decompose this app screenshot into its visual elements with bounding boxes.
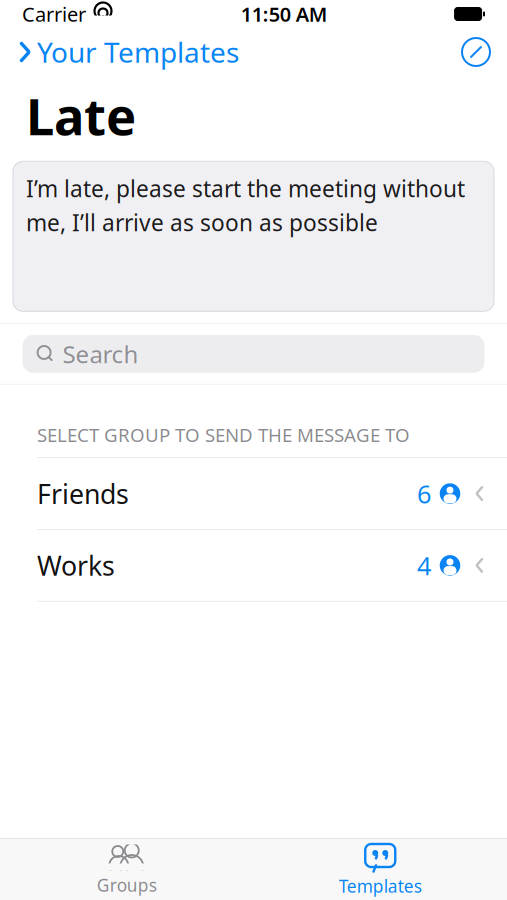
button[interactable]: Works bbox=[0, 530, 507, 601]
staticText: Friends bbox=[37, 476, 129, 511]
staticText: 4 bbox=[417, 549, 431, 582]
button[interactable]: Search bbox=[22, 335, 484, 373]
staticText: I’m late, please start the meeting witho… bbox=[26, 173, 465, 237]
button[interactable]: Edit template bbox=[445, 31, 507, 73]
staticText: Carrier bbox=[22, 1, 86, 27]
staticText: Works bbox=[37, 548, 115, 583]
staticText: Search bbox=[62, 338, 138, 370]
staticText: SELECT GROUP TO SEND THE MESSAGE TO bbox=[37, 422, 410, 447]
staticText: Your Templates bbox=[37, 33, 239, 71]
staticText: Groups bbox=[97, 873, 157, 896]
button[interactable]: Your Templates bbox=[0, 27, 249, 77]
button[interactable]: Groups bbox=[0, 836, 253, 900]
staticText: Templates bbox=[339, 874, 422, 897]
staticText: 6 bbox=[417, 477, 431, 510]
staticText: Late bbox=[26, 82, 136, 149]
button[interactable]: Friends bbox=[0, 458, 507, 529]
button[interactable]: Templates bbox=[253, 835, 507, 900]
staticText: 11:50 AM bbox=[241, 1, 328, 27]
